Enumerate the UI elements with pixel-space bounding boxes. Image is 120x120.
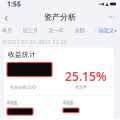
button[interactable]: More options xyxy=(105,10,118,23)
button[interactable]: 明细 xyxy=(7,99,39,115)
staticText: 2021-01-01~2021-12-26 xyxy=(8,38,67,46)
button[interactable]: 全部 xyxy=(74,25,84,35)
staticText: 近三月 xyxy=(23,27,38,34)
staticText: › xyxy=(74,99,76,107)
button[interactable]: 明细 xyxy=(63,99,89,113)
button[interactable]: 本月 xyxy=(2,25,12,35)
staticText: 收益金额(元) xyxy=(10,84,32,90)
staticText: 明细 xyxy=(63,100,73,106)
staticText: 1:55 xyxy=(7,0,21,8)
staticText: ‹ xyxy=(4,10,7,24)
staticText: ▾ xyxy=(114,28,116,33)
staticText: 近一年 xyxy=(49,27,64,34)
staticText: 25.15% xyxy=(65,68,107,84)
button[interactable]: 近一年 xyxy=(49,25,64,35)
button[interactable]: 近三月 xyxy=(23,25,38,35)
staticText: ▲ xyxy=(105,2,108,6)
staticText: 自定义 xyxy=(99,27,114,34)
staticText: 资产分析 xyxy=(44,12,76,22)
staticText: › xyxy=(18,99,20,107)
staticText: 收益统计 xyxy=(8,50,36,59)
staticText: 全部 xyxy=(74,27,84,34)
button[interactable]: 自定义 xyxy=(96,25,116,35)
staticText: 明细 xyxy=(7,100,17,106)
button[interactable]: Back xyxy=(0,10,11,23)
staticText: 收益率 xyxy=(75,84,87,89)
staticText: 本月 xyxy=(2,27,12,34)
